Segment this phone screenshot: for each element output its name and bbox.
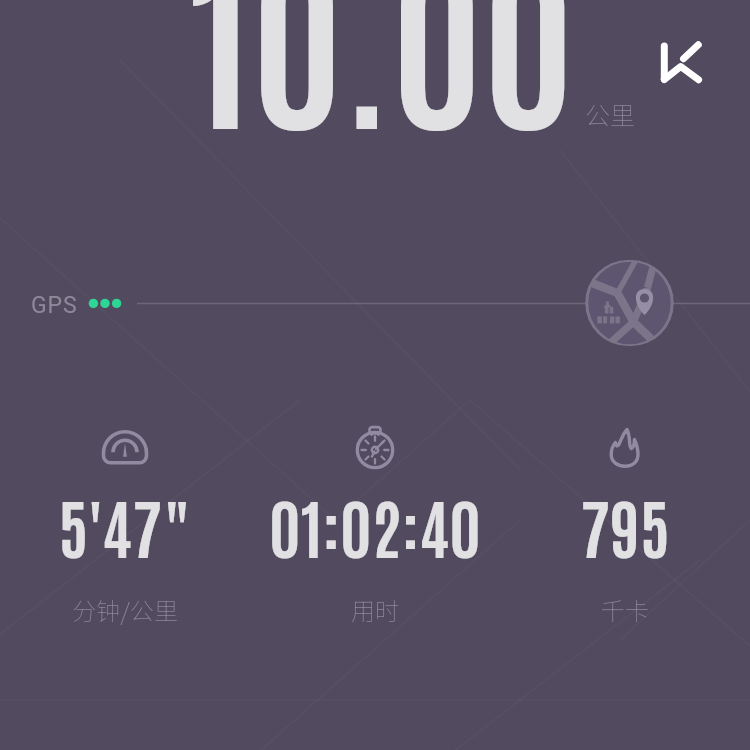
staticText: 千卡 — [450, 592, 750, 635]
staticText: GPS — [31, 292, 78, 319]
staticText: 分钟/公里 — [0, 592, 300, 635]
button[interactable] — [35, 418, 215, 633]
staticText: 用时 — [200, 592, 550, 635]
staticText: 公里 — [585, 96, 636, 132]
button[interactable] — [285, 418, 465, 633]
button[interactable]: Map — [585, 260, 674, 346]
staticText: 10.00 — [189, 0, 575, 155]
button[interactable] — [535, 418, 715, 633]
staticText: 795 — [450, 483, 750, 600]
staticText: 5'47" — [0, 483, 300, 600]
staticText: 01:02:40 — [200, 483, 550, 600]
button[interactable]: Keep — [655, 36, 707, 88]
